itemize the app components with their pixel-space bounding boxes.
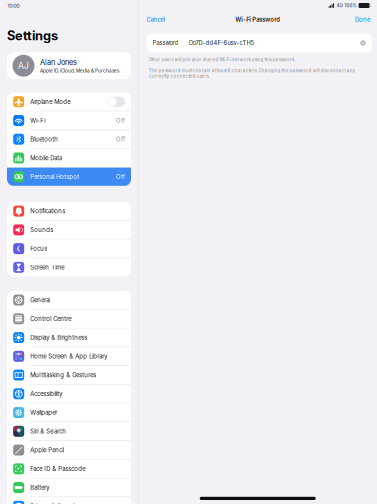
staticText: Wallpaper [30, 409, 57, 416]
button[interactable]: Sounds [7, 221, 131, 239]
button[interactable]: Done [355, 16, 370, 23]
staticText: Multitasking & Gestures [30, 371, 96, 379]
staticText: Personal Hotspot [30, 173, 79, 180]
staticText: Alan Jones [40, 58, 77, 67]
button[interactable]: Control Centre [7, 310, 131, 328]
staticText: Wi-Fi [30, 117, 45, 124]
button[interactable]: Display & Brightness [7, 328, 131, 347]
staticText: Oo7D-dd4F-6usv-cTH5 [188, 39, 253, 46]
staticText: Screen Time [30, 264, 64, 271]
staticText: Control Centre [30, 315, 71, 322]
button[interactable]: Focus [7, 239, 131, 258]
staticText: Off [116, 136, 125, 143]
staticText: Done [355, 16, 370, 23]
staticText: Wi-Fi Password [235, 16, 280, 23]
staticText: Focus [30, 245, 47, 252]
button[interactable]: Screen Time [7, 258, 131, 276]
button[interactable]: Battery [7, 478, 131, 497]
staticText: Mobile Data [30, 154, 62, 162]
staticText: Face ID & Passcode [30, 465, 85, 472]
staticText: 100% [345, 3, 357, 8]
staticText: General [30, 296, 50, 304]
staticText: Apple Pencil [30, 446, 64, 454]
button[interactable]: Home Screen & App Library [7, 347, 131, 365]
staticText: Accessibility [30, 390, 62, 397]
staticText: Password [152, 40, 177, 46]
staticText: Display & Brightness [30, 334, 87, 341]
staticText: 10:00 [7, 3, 19, 9]
staticText: Cancel [146, 16, 164, 23]
button[interactable]: Wi-Fi [7, 111, 131, 130]
button[interactable]: Wallpaper [7, 403, 131, 422]
staticText: Notifications [30, 207, 65, 215]
staticText: Other users will join your shared Wi-Fi … [148, 57, 295, 62]
staticText: Bluetooth [30, 136, 58, 143]
button[interactable]: Mobile Data [7, 149, 131, 167]
staticText: Home Screen & App Library [30, 353, 107, 360]
button[interactable]: Face ID & Passcode [7, 460, 131, 478]
button[interactable]: Airplane Mode [7, 93, 131, 111]
staticText: Settings [7, 28, 58, 43]
staticText: Apple ID, iCloud, Media & Purchases [40, 68, 119, 74]
button[interactable]: AJ [7, 52, 131, 79]
button[interactable]: Bluetooth [7, 130, 131, 148]
staticText: Off [116, 117, 125, 124]
button[interactable]: Accessibility [7, 385, 131, 403]
button[interactable]: Notifications [7, 202, 131, 220]
staticText: Off [116, 173, 125, 180]
staticText: 4G [337, 3, 343, 8]
button[interactable]: Personal Hotspot [7, 168, 131, 186]
button[interactable]: Multitasking & Gestures [7, 366, 131, 384]
staticText: AJ [18, 61, 29, 71]
button[interactable]: General [7, 291, 131, 309]
staticText: The password must contain at least 8 cha… [148, 68, 355, 79]
staticText: Siri & Search [30, 428, 66, 435]
button[interactable]: Cancel [146, 16, 164, 23]
staticText: Sounds [30, 226, 53, 233]
button[interactable]: Clear password [359, 39, 367, 47]
button[interactable]: Apple Pencil [7, 441, 131, 459]
staticText: Airplane Mode [30, 98, 70, 105]
staticText: Battery [30, 484, 49, 491]
button[interactable]: Privacy & Security [7, 497, 131, 504]
staticText: Privacy & Security [30, 503, 79, 504]
button[interactable]: Siri & Search [7, 422, 131, 440]
